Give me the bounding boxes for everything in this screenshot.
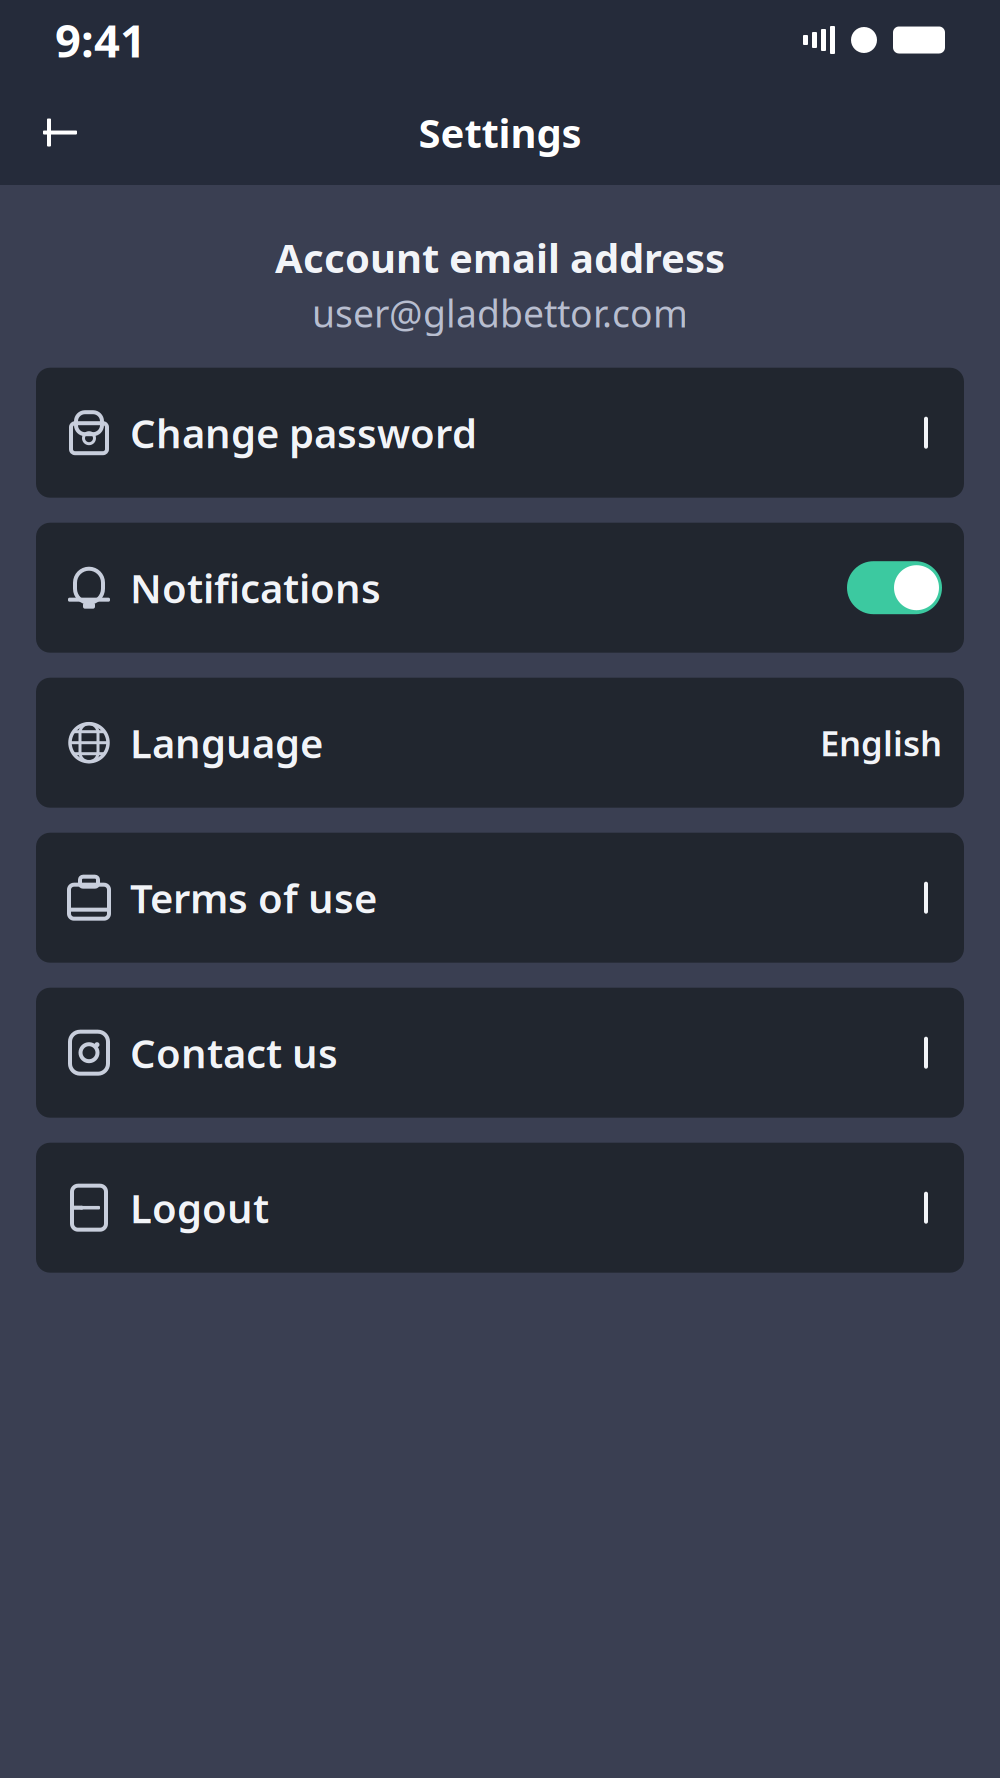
- button[interactable]: Terms of use: [36, 833, 964, 963]
- staticText: Contact us: [130, 1026, 338, 1079]
- staticText: Notifications: [130, 561, 381, 614]
- staticText: user@gladbettor.com: [312, 288, 688, 338]
- button[interactable]: Logout: [36, 1143, 964, 1273]
- button[interactable]: Language: [36, 678, 964, 808]
- staticText: Settings: [418, 106, 581, 159]
- button[interactable]: Notifications: [36, 523, 964, 653]
- staticText: Language: [130, 716, 323, 769]
- staticText: Logout: [130, 1181, 269, 1234]
- staticText: English: [820, 720, 942, 766]
- staticText: Account email address: [275, 231, 725, 284]
- staticText: 9:41: [55, 10, 146, 70]
- staticText: Terms of use: [130, 871, 377, 924]
- staticText: Change password: [130, 406, 477, 459]
- button[interactable]: Change password: [36, 368, 964, 498]
- button[interactable]: Back: [30, 102, 90, 162]
- button[interactable]: Contact us: [36, 988, 964, 1118]
